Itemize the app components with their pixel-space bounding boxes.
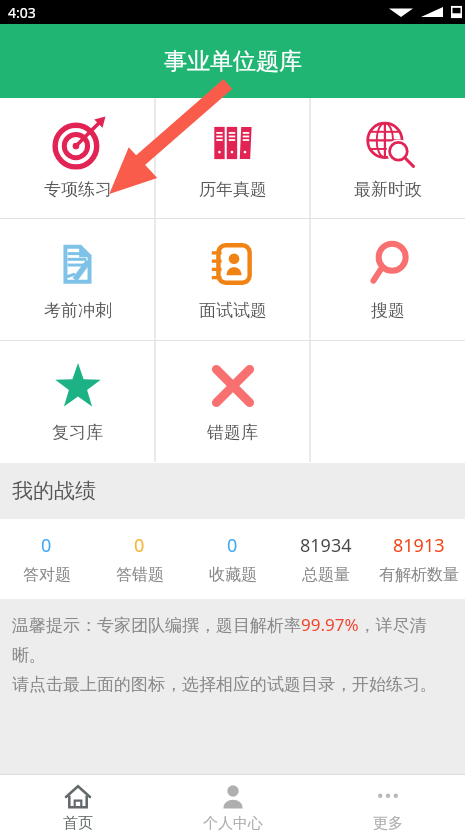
staticText: 答错题 <box>116 565 164 585</box>
staticText: 错题库 <box>207 422 258 443</box>
staticText: 总题量 <box>302 565 350 585</box>
button[interactable]: 0 <box>186 519 279 599</box>
button[interactable]: 更多 <box>310 774 465 840</box>
button[interactable]: 搜题 <box>310 219 465 340</box>
staticText: 考前冲刺 <box>44 300 112 321</box>
button[interactable]: 复习库 <box>0 341 155 462</box>
staticText: 面试试题 <box>199 300 267 321</box>
staticText: 有解析数量 <box>379 565 459 585</box>
button[interactable]: 历年真题 <box>155 98 310 218</box>
staticText: 搜题 <box>371 300 405 321</box>
staticText: 收藏题 <box>209 565 257 585</box>
staticText: 历年真题 <box>199 179 267 200</box>
staticText: 0 <box>134 533 145 558</box>
button[interactable]: 专项练习 <box>0 98 155 218</box>
staticText: 0 <box>41 533 52 558</box>
button[interactable]: 错题库 <box>155 341 310 462</box>
staticText: 首页 <box>63 814 93 833</box>
staticText: 答对题 <box>23 565 71 585</box>
button[interactable]: 考前冲刺 <box>0 219 155 340</box>
staticText: 最新时政 <box>354 179 422 200</box>
button[interactable]: 首页 <box>0 774 155 840</box>
button[interactable]: 81913 <box>372 519 465 599</box>
staticText: 更多 <box>373 814 403 833</box>
staticText: 事业单位题库 <box>164 47 302 76</box>
staticText: 0 <box>227 533 238 558</box>
button[interactable]: 个人中心 <box>155 774 310 840</box>
button[interactable]: 最新时政 <box>310 98 465 218</box>
button[interactable]: 0 <box>0 519 93 599</box>
staticText: 4:03 <box>8 3 36 22</box>
staticText: 专项练习 <box>44 179 112 200</box>
button[interactable]: 面试试题 <box>155 219 310 340</box>
button[interactable]: 81934 <box>279 519 372 599</box>
staticText: 复习库 <box>52 422 103 443</box>
staticText: 温馨提示：专家团队编撰，题目解析率99.97%，详尽清晰。 请点击最上面的图标，… <box>12 613 451 695</box>
staticText: 81913 <box>393 533 445 558</box>
button[interactable]: 0 <box>93 519 186 599</box>
staticText: 个人中心 <box>203 814 263 833</box>
staticText: 我的战绩 <box>12 478 96 504</box>
staticText: 81934 <box>300 533 352 558</box>
